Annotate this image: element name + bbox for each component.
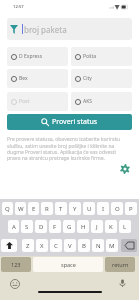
staticText: D xyxy=(39,223,44,231)
button[interactable]: I xyxy=(97,202,109,215)
button[interactable]: Shift xyxy=(1,239,17,252)
staticText: E xyxy=(32,205,36,213)
button[interactable]: space xyxy=(33,257,103,272)
staticText: H xyxy=(81,223,86,231)
button[interactable]: Q xyxy=(2,202,13,215)
staticText: N xyxy=(96,242,101,250)
staticText: D Express xyxy=(19,53,43,60)
button[interactable]: H xyxy=(77,220,89,233)
staticText: space xyxy=(61,261,76,268)
button[interactable]: L xyxy=(119,220,131,233)
staticText: broj paketa xyxy=(24,24,67,35)
staticText: Z xyxy=(26,242,30,250)
button[interactable]: Post xyxy=(7,92,68,111)
staticText: Bex xyxy=(19,75,28,82)
button[interactable]: U xyxy=(83,202,95,215)
button[interactable]: D Express xyxy=(7,47,68,66)
button[interactable]: return xyxy=(105,257,135,272)
button[interactable]: Proveri status xyxy=(7,114,132,130)
button[interactable]: J xyxy=(91,220,103,233)
button[interactable]: City xyxy=(71,69,132,88)
button[interactable]: Y xyxy=(69,202,81,215)
button[interactable]: S xyxy=(21,220,33,233)
staticText: Pošta xyxy=(83,53,97,60)
staticText: F xyxy=(53,223,57,231)
staticText: Pre provere statusa, obavezno izaberite … xyxy=(7,136,129,161)
button[interactable]: W xyxy=(15,202,26,215)
staticText: A xyxy=(12,223,16,231)
staticText: R xyxy=(45,205,49,213)
button[interactable]: F xyxy=(49,220,61,233)
button[interactable]: T xyxy=(55,202,67,215)
staticText: O xyxy=(115,205,120,213)
button[interactable]: K xyxy=(105,220,117,233)
button[interactable]: G xyxy=(63,220,75,233)
button[interactable]: Backspace xyxy=(121,239,137,252)
button[interactable]: broj paketa xyxy=(7,18,132,40)
button[interactable]: Microphone xyxy=(118,279,127,288)
button[interactable]: Z xyxy=(22,239,34,252)
button[interactable]: X xyxy=(36,239,48,252)
button[interactable]: M xyxy=(106,239,118,252)
button[interactable]: R xyxy=(41,202,53,215)
button[interactable]: Settings xyxy=(118,162,132,176)
button[interactable]: C xyxy=(50,239,62,252)
staticText: X xyxy=(40,242,44,250)
staticText: I xyxy=(102,205,105,213)
staticText: 12:57 xyxy=(13,4,24,10)
button[interactable]: A xyxy=(8,220,19,233)
staticText: V xyxy=(68,242,72,250)
staticText: B xyxy=(82,242,86,250)
staticText: G xyxy=(67,223,72,231)
staticText: S xyxy=(25,223,29,231)
staticText: J xyxy=(96,223,98,231)
staticText: AKS xyxy=(83,98,93,105)
staticText: Q xyxy=(5,205,10,213)
staticText: Post xyxy=(19,98,30,105)
button[interactable]: Pošta xyxy=(71,47,132,66)
button[interactable]: N xyxy=(92,239,104,252)
staticText: C xyxy=(54,242,58,250)
button[interactable]: D xyxy=(35,220,47,233)
button[interactable]: Emoji xyxy=(10,279,20,289)
button[interactable]: 123 xyxy=(1,257,31,272)
button[interactable]: P xyxy=(125,202,137,215)
staticText: Proveri status xyxy=(52,117,98,127)
staticText: Y xyxy=(73,205,77,213)
button[interactable]: V xyxy=(64,239,76,252)
button[interactable]: AKS xyxy=(71,92,132,111)
staticText: return xyxy=(112,261,129,268)
button[interactable]: E xyxy=(28,202,39,215)
staticText: L xyxy=(123,223,127,231)
button[interactable]: B xyxy=(78,239,90,252)
staticText: M xyxy=(109,242,115,250)
staticText: U xyxy=(87,205,92,213)
staticText: K xyxy=(109,223,113,231)
staticText: P xyxy=(129,205,133,213)
button[interactable]: Bex xyxy=(7,69,68,88)
staticText: 123 xyxy=(11,261,21,268)
staticText: City xyxy=(83,75,92,82)
staticText: W xyxy=(18,205,24,213)
button[interactable]: O xyxy=(111,202,123,215)
staticText: T xyxy=(59,205,63,213)
